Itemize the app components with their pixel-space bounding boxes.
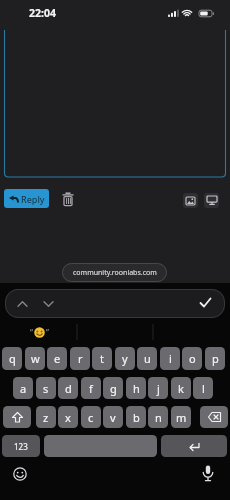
staticText: s: [43, 381, 49, 396]
button[interactable]: y: [115, 347, 135, 370]
staticText: o: [189, 351, 196, 366]
staticText: n: [155, 410, 162, 425]
button[interactable]: h: [126, 377, 146, 399]
button[interactable]: [17, 300, 28, 308]
button[interactable]: “: [8, 320, 70, 344]
staticText: w: [31, 351, 40, 366]
staticText: g: [110, 381, 117, 396]
staticText: p: [212, 351, 219, 366]
staticText: m: [176, 410, 187, 425]
staticText: z: [43, 410, 49, 425]
button[interactable]: [4, 30, 226, 177]
staticText: q: [9, 351, 16, 366]
button[interactable]: x: [58, 406, 78, 428]
button[interactable]: m: [171, 406, 191, 428]
staticText: y: [122, 351, 128, 366]
button[interactable]: j: [148, 377, 168, 399]
staticText: 22:04: [29, 6, 56, 20]
button[interactable]: Reply: [4, 189, 49, 208]
button[interactable]: k: [171, 377, 191, 399]
staticText: ”: [46, 327, 49, 338]
staticText: community.roonlabs.com: [73, 268, 157, 278]
button[interactable]: a: [13, 377, 33, 399]
button[interactable]: e: [47, 347, 67, 370]
button[interactable]: d: [58, 377, 78, 399]
staticText: b: [133, 410, 140, 425]
staticText: 123: [14, 441, 28, 452]
staticText: x: [65, 410, 71, 425]
button[interactable]: t: [92, 347, 112, 370]
button[interactable]: i: [160, 347, 180, 370]
button[interactable]: s: [36, 377, 56, 399]
button[interactable]: [199, 297, 212, 308]
button[interactable]: community.roonlabs.com: [62, 263, 167, 282]
button[interactable]: g: [103, 377, 123, 399]
staticText: l: [202, 381, 205, 396]
button[interactable]: [200, 406, 228, 428]
staticText: v: [110, 410, 116, 425]
button[interactable]: [13, 467, 27, 481]
button[interactable]: [43, 300, 54, 308]
button[interactable]: [161, 435, 227, 457]
button[interactable]: v: [103, 406, 123, 428]
staticText: k: [178, 381, 184, 396]
staticText: i: [169, 351, 172, 366]
button[interactable]: p: [205, 347, 225, 370]
button[interactable]: w: [25, 347, 45, 370]
staticText: c: [88, 410, 94, 425]
staticText: h: [133, 381, 140, 396]
staticText: t: [100, 351, 104, 366]
button[interactable]: q: [2, 347, 22, 370]
button[interactable]: [44, 435, 157, 457]
button[interactable]: [202, 465, 214, 482]
button[interactable]: u: [137, 347, 157, 370]
button[interactable]: r: [70, 347, 90, 370]
staticText: a: [20, 381, 27, 396]
button[interactable]: c: [81, 406, 101, 428]
staticText: r: [78, 351, 83, 366]
button[interactable]: 123: [2, 435, 40, 457]
staticText: d: [65, 381, 72, 396]
staticText: e: [54, 351, 61, 366]
button[interactable]: [62, 192, 74, 206]
button[interactable]: n: [148, 406, 168, 428]
button[interactable]: [204, 193, 219, 208]
button[interactable]: l: [193, 377, 213, 399]
button[interactable]: o: [182, 347, 202, 370]
button[interactable]: z: [36, 406, 56, 428]
button[interactable]: [3, 406, 31, 428]
staticText: j: [157, 381, 160, 396]
staticText: “: [30, 327, 33, 338]
staticText: Reply: [21, 193, 45, 205]
button[interactable]: b: [126, 406, 146, 428]
button[interactable]: [183, 193, 198, 208]
button[interactable]: f: [81, 377, 101, 399]
staticText: u: [144, 351, 151, 366]
staticText: f: [89, 381, 93, 396]
